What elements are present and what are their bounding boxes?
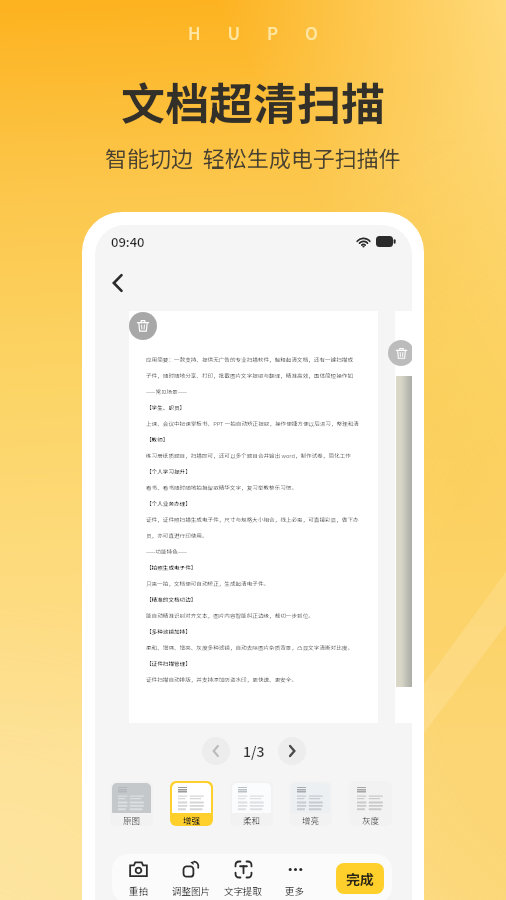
button[interactable]: 调整图片: [165, 854, 217, 900]
staticText: 调整图片: [172, 884, 211, 898]
staticText: 【教师】: [146, 436, 361, 444]
button[interactable]: 增亮: [289, 781, 332, 826]
staticText: 只需一拍，文档便可自动矫正，生成超清电子件。: [146, 580, 361, 588]
staticText: 能自动精准识别对齐文本，图片内容智能纠正边缘，裁切一步到位。: [146, 612, 361, 620]
staticText: 柔和: [243, 814, 261, 826]
staticText: 增亮: [302, 814, 320, 826]
button[interactable]: Delete page: [129, 312, 157, 340]
button[interactable]: 增强: [170, 781, 213, 826]
button[interactable]: 更多: [269, 854, 321, 900]
staticText: 原图: [123, 814, 141, 826]
staticText: 证件扫描自动排版，并支持添加防盗水印，更快速、更安全。: [146, 676, 361, 684]
button[interactable]: Next page: [278, 737, 306, 765]
staticText: 【精准的文档切边】: [146, 596, 361, 604]
staticText: 完成: [346, 869, 374, 889]
staticText: 1/3: [243, 741, 265, 761]
staticText: 上课、会议中把课堂板书、PPT 一拍自动矫正提取，操作便捷方便以后温习，整理和清…: [146, 420, 361, 428]
staticText: 证件，证件照扫描生成电子件，尺寸与规格大小相合，线上必需，可直接彩显，做下办理会: [146, 516, 361, 524]
staticText: 灰度: [362, 814, 380, 826]
staticText: 【学生、职员】: [146, 404, 361, 412]
button[interactable]: 重拍: [112, 854, 165, 900]
staticText: 应用简要：一款支持、提供无广告的专业扫描软件，解释超清文档，还有一键扫描成 pd…: [146, 356, 361, 364]
staticText: 文字提取: [224, 884, 263, 898]
staticText: 练习册纸质题目，扫描即可，还可以多个题目合并输出 word，制作试卷，简化工作量…: [146, 452, 361, 460]
button[interactable]: Delete next page: [388, 340, 412, 366]
staticText: ——功能特色——: [146, 548, 361, 556]
staticText: 增强: [183, 814, 201, 826]
staticText: 子件，随时随地分享、打印，批截图片文字提取与翻译，精准高效，国体简短操作如下：: [146, 372, 361, 380]
button[interactable]: 文字提取: [217, 854, 269, 900]
button[interactable]: 柔和: [230, 781, 273, 826]
button[interactable]: 灰度: [349, 781, 392, 826]
staticText: 柔和、增强、增亮、灰度多种滤镜，自动去除图片杂质背景，凸显文字清晰对比度。: [146, 644, 361, 652]
staticText: 文档超清扫描: [121, 69, 385, 133]
staticText: ——常见场景——: [146, 388, 361, 396]
button[interactable]: Back: [99, 264, 137, 302]
staticText: 【拍照生成电子件】: [146, 564, 361, 572]
staticText: 员，亦可直进行印使用。: [146, 532, 361, 540]
staticText: 更多: [285, 884, 305, 898]
staticText: 【证件扫描管理】: [146, 660, 361, 668]
staticText: HUPO: [188, 20, 345, 45]
button[interactable]: Previous page: [202, 737, 230, 765]
button[interactable]: 原图: [110, 781, 153, 826]
staticText: 智能切边 轻松生成电子扫描件: [105, 141, 401, 173]
staticText: 【多种滤镜加持】: [146, 628, 361, 636]
staticText: 【个人学习提升】: [146, 468, 361, 476]
staticText: 重拍: [129, 884, 149, 898]
staticText: 09:40: [111, 232, 145, 251]
button[interactable]: 完成: [336, 863, 384, 894]
staticText: 看书、看书随时随地拍摄留取精华文字，复习举教整乐习惯。: [146, 484, 361, 492]
staticText: 【个人业务办理】: [146, 500, 361, 508]
